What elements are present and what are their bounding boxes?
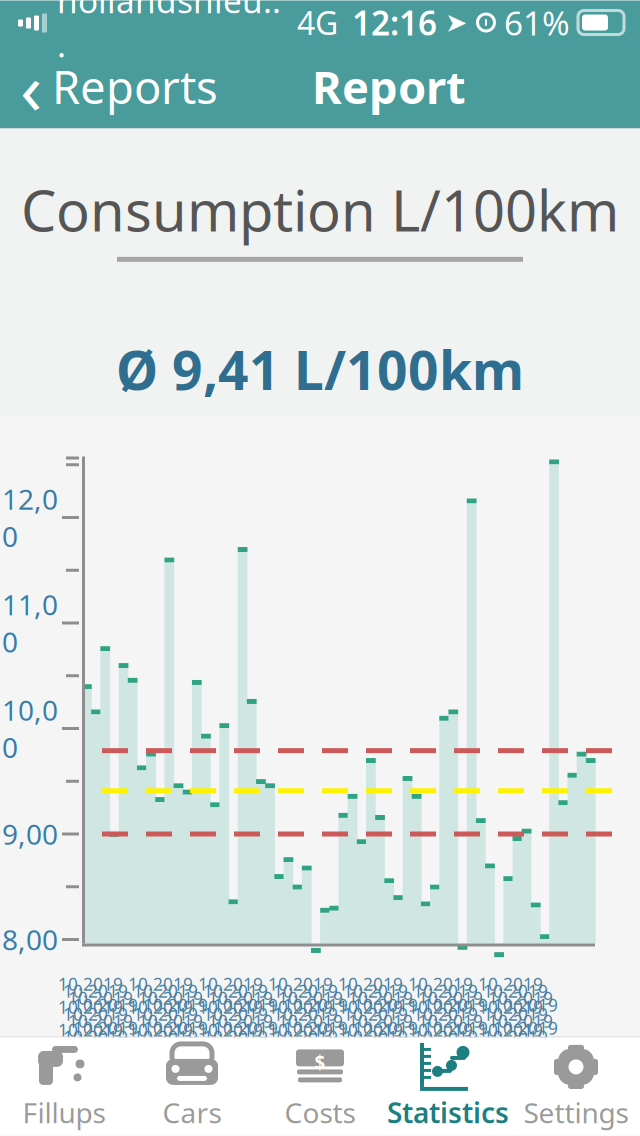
staticText: 4G [297, 1, 338, 44]
staticText: hollandsnieu... [57, 0, 281, 67]
button[interactable]: Statistics [384, 1037, 512, 1135]
button[interactable]: ‹ [0, 44, 232, 128]
staticText: $ [314, 1050, 325, 1075]
staticText: 10.2019 10.2019 10.2019 10.2019 10.2019 … [68, 986, 553, 1102]
staticText: 10.2019 10.2019 10.2019 10.2019 10.2019 … [58, 972, 543, 1088]
staticText: 11,00 [2, 586, 58, 660]
staticText: Reports [52, 56, 218, 117]
staticText: Consumption L/100km [21, 172, 619, 247]
staticText: Statistics [387, 1094, 509, 1131]
staticText: 12:16 [352, 0, 437, 45]
staticText: Fillups [22, 1094, 105, 1131]
button[interactable]: Settings [512, 1037, 640, 1135]
staticText: Settings [523, 1094, 628, 1131]
button[interactable]: $ [256, 1037, 384, 1135]
staticText: 9,00 [2, 815, 58, 853]
staticText: ➤ [445, 7, 467, 38]
staticText: 8,00 [2, 921, 58, 958]
button[interactable]: Fillups [0, 1037, 128, 1135]
staticText: Ø 9,41 L/100km [116, 334, 524, 405]
staticText: Report [312, 56, 466, 117]
staticText: 10.2019 10.2019 10.2019 10.2019 10.2019 … [73, 993, 558, 1109]
staticText: Cars [162, 1094, 221, 1131]
staticText: 61% [504, 0, 570, 45]
staticText: 10,00 [2, 691, 58, 766]
staticText: Costs [284, 1094, 355, 1131]
button[interactable]: Cars [128, 1037, 256, 1135]
staticText: ‹ [20, 39, 42, 134]
staticText: 12,00 [2, 480, 58, 555]
staticText: 10.2019 10.2019 10.2019 10.2019 10.2019 … [63, 979, 548, 1095]
